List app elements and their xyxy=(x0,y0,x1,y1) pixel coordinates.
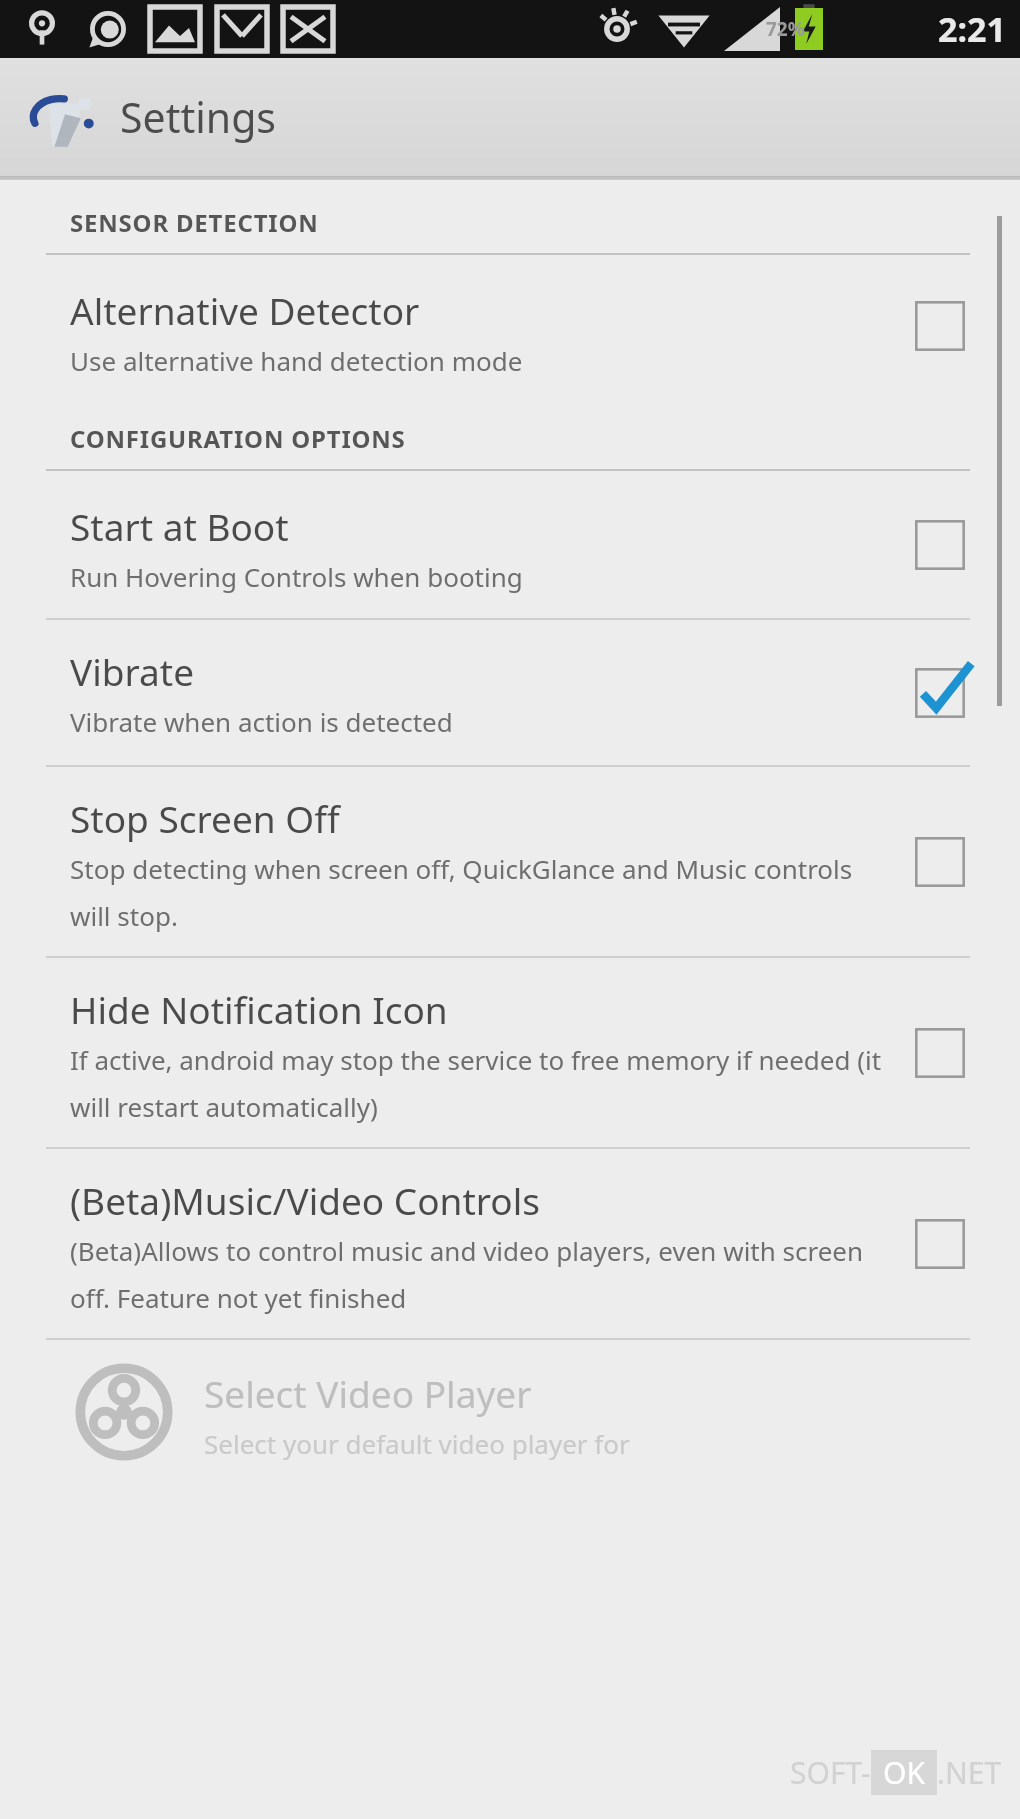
button[interactable]: Checked xyxy=(892,645,988,741)
staticText: Settings xyxy=(120,89,277,145)
button[interactable]: Vibrate xyxy=(0,620,1020,765)
button[interactable]: Select Video Player xyxy=(0,1340,1020,1464)
staticText: 2:21 xyxy=(938,6,1006,52)
staticText: Vibrate xyxy=(70,646,195,696)
button[interactable]: Alternative Detector xyxy=(0,255,1020,396)
button[interactable]: Unchecked xyxy=(892,1196,988,1292)
staticText: Use alternative hand detection mode xyxy=(70,343,523,378)
staticText: If active, android may stop the service … xyxy=(70,1042,882,1125)
staticText: Select Video Player xyxy=(204,1368,532,1418)
staticText: Stop detecting when screen off, QuickGla… xyxy=(70,851,882,934)
staticText: CONFIGURATION OPTIONS xyxy=(70,422,406,455)
staticText: SENSOR DETECTION xyxy=(70,206,319,239)
staticText: .NET xyxy=(937,1752,1002,1793)
button[interactable]: Unchecked xyxy=(892,1005,988,1101)
staticText: Start at Boot xyxy=(70,501,289,551)
button[interactable]: Start at Boot xyxy=(0,471,1020,618)
staticText: (Beta)Music/Video Controls xyxy=(70,1175,541,1225)
staticText: OK xyxy=(883,1752,925,1793)
staticText: Select your default video player for xyxy=(204,1426,630,1461)
button[interactable]: (Beta)Music/Video Controls xyxy=(0,1149,1020,1338)
staticText: Vibrate when action is detected xyxy=(70,704,453,739)
button[interactable]: Stop Screen Off xyxy=(0,767,1020,956)
staticText: Alternative Detector xyxy=(70,285,420,335)
staticText: Hide Notification Icon xyxy=(70,984,448,1034)
staticText: Run Hovering Controls when booting xyxy=(70,559,523,594)
button[interactable]: Unchecked xyxy=(892,278,988,374)
staticText: (Beta)Allows to control music and video … xyxy=(70,1233,882,1316)
staticText: SOFT- xyxy=(790,1752,871,1793)
button[interactable]: Unchecked xyxy=(892,497,988,593)
button[interactable]: Unchecked xyxy=(892,814,988,910)
staticText: 72% xyxy=(766,16,805,42)
button[interactable]: Hide Notification Icon xyxy=(0,958,1020,1147)
staticText: Stop Screen Off xyxy=(70,793,340,843)
